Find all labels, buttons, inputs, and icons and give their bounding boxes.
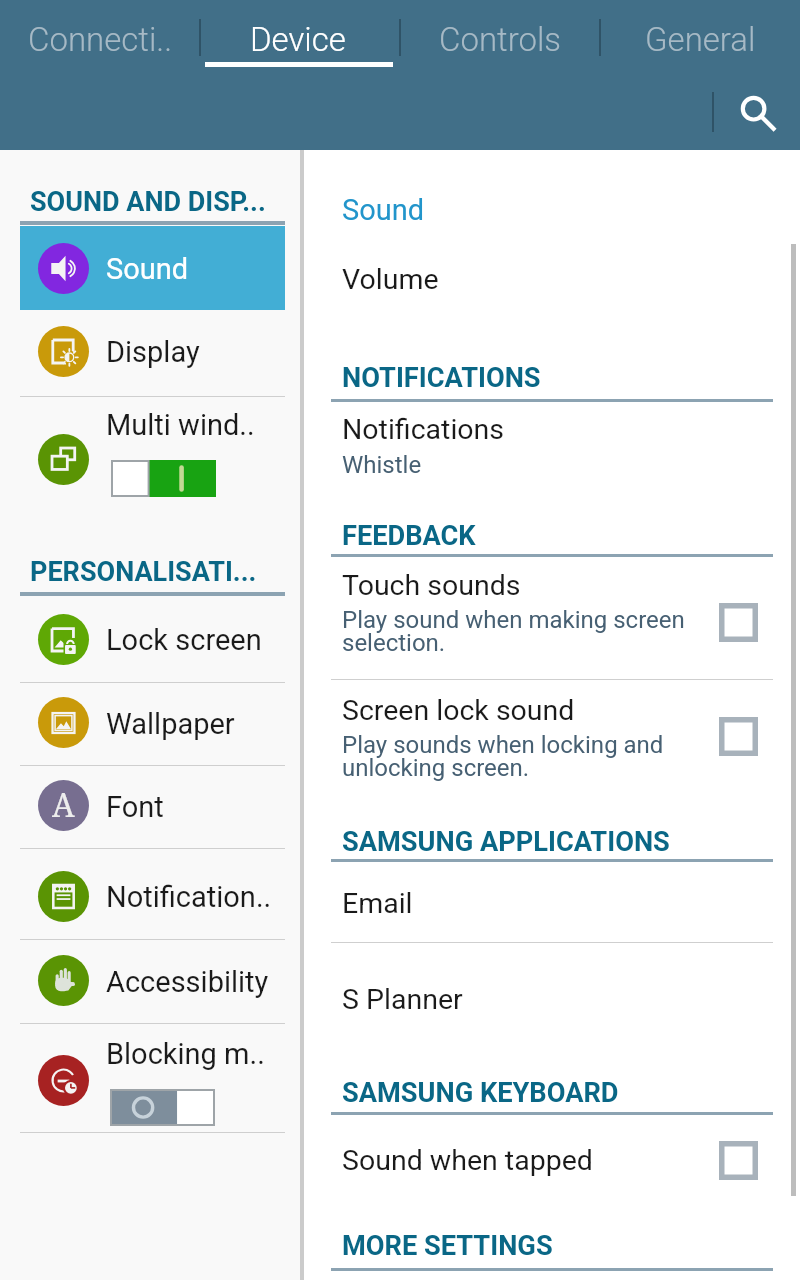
- button[interactable]: Toggle checkbox: [719, 603, 758, 642]
- button[interactable]: [305, 1115, 800, 1195]
- button[interactable]: [305, 557, 800, 679]
- button[interactable]: [20, 1023, 285, 1132]
- staticText: Accessibility: [106, 965, 269, 999]
- button[interactable]: Toggle checkbox: [719, 1141, 758, 1180]
- button[interactable]: Controls: [401, 2, 599, 77]
- staticText: Sound: [342, 193, 425, 227]
- staticText: NOTIFICATIONS: [342, 362, 541, 394]
- button[interactable]: On: [111, 460, 216, 497]
- button[interactable]: Search: [728, 84, 788, 144]
- button[interactable]: [305, 402, 800, 492]
- staticText: Font: [106, 790, 164, 824]
- button[interactable]: [20, 939, 285, 1023]
- button[interactable]: Connecti..: [1, 2, 199, 77]
- staticText: SAMSUNG KEYBOARD: [342, 1077, 619, 1109]
- staticText: Connecti..: [28, 20, 173, 59]
- button[interactable]: [20, 397, 285, 513]
- staticText: Volume: [342, 263, 439, 296]
- staticText: Display: [106, 335, 200, 369]
- button[interactable]: Off: [110, 1089, 215, 1126]
- staticText: Sound when tapped: [342, 1144, 593, 1177]
- button[interactable]: [20, 597, 285, 681]
- button[interactable]: General: [601, 2, 799, 77]
- staticText: FEEDBACK: [342, 520, 476, 552]
- button[interactable]: [20, 226, 285, 310]
- staticText: Sound: [106, 252, 189, 286]
- staticText: Play sound when making screen selection.: [342, 606, 742, 657]
- staticText: Notifications: [342, 413, 505, 446]
- staticText: Wallpaper: [106, 707, 235, 741]
- staticText: Multi wind..: [106, 408, 255, 442]
- staticText: Controls: [439, 20, 562, 59]
- staticText: SOUND AND DISP...: [30, 186, 266, 218]
- button[interactable]: [305, 250, 800, 310]
- staticText: General: [645, 20, 756, 59]
- staticText: Email: [342, 887, 413, 920]
- button[interactable]: [20, 310, 285, 396]
- staticText: Touch sounds: [342, 569, 521, 602]
- staticText: Whistle: [342, 451, 422, 479]
- staticText: Play sounds when locking and unlocking s…: [342, 731, 742, 782]
- button[interactable]: Toggle checkbox: [719, 717, 758, 756]
- staticText: S Planner: [342, 983, 463, 1016]
- staticText: Device: [250, 20, 346, 59]
- staticText: Blocking m..: [106, 1037, 265, 1071]
- button[interactable]: Device: [199, 2, 397, 77]
- staticText: A: [52, 783, 75, 827]
- button[interactable]: [305, 862, 800, 942]
- staticText: Notification..: [106, 880, 272, 914]
- button[interactable]: [305, 680, 800, 800]
- button[interactable]: [20, 854, 285, 938]
- button[interactable]: [305, 943, 800, 1023]
- button[interactable]: [20, 764, 285, 848]
- staticText: Lock screen: [106, 623, 262, 657]
- staticText: MORE SETTINGS: [342, 1230, 553, 1262]
- staticText: SAMSUNG APPLICATIONS: [342, 826, 670, 858]
- button[interactable]: [20, 681, 285, 765]
- staticText: Screen lock sound: [342, 694, 575, 727]
- staticText: PERSONALISATI...: [30, 556, 257, 588]
